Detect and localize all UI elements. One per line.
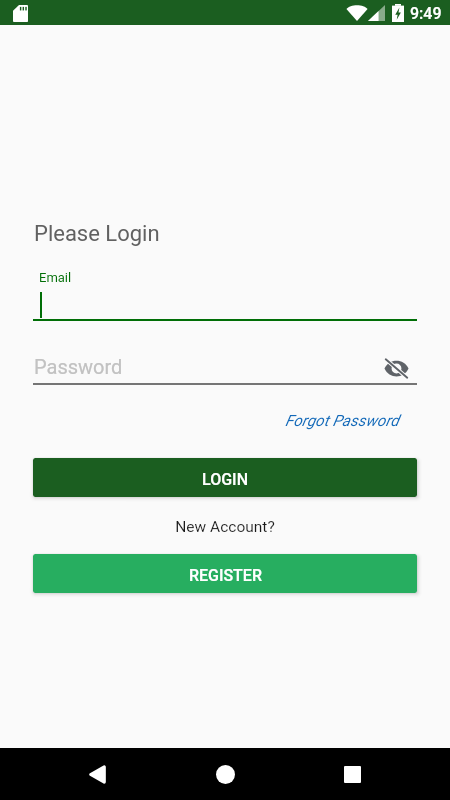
staticText: LOGIN <box>202 470 248 489</box>
button[interactable]: LOGIN <box>33 458 417 497</box>
staticText: Email <box>39 270 72 285</box>
staticText: Password <box>34 355 123 378</box>
button[interactable]: Home <box>201 750 249 798</box>
staticText: Please Login <box>34 221 160 247</box>
button[interactable]: Back <box>73 750 121 798</box>
button[interactable]: Recent apps <box>328 750 376 798</box>
button[interactable]: Forgot Password <box>285 412 399 430</box>
button[interactable]: REGISTER <box>33 554 417 593</box>
button[interactable]: Show password <box>383 355 409 381</box>
staticText: New Account? <box>0 518 450 536</box>
staticText: Forgot Password <box>285 412 399 430</box>
staticText: 9:49 <box>410 4 442 23</box>
button[interactable]: Email <box>33 266 417 321</box>
staticText: REGISTER <box>189 566 262 585</box>
button[interactable]: Password <box>33 352 417 384</box>
